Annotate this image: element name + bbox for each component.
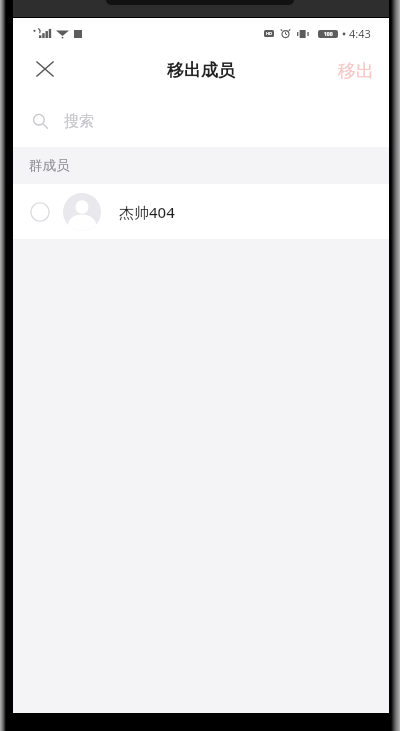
button[interactable]: Close — [23, 47, 67, 91]
staticText: 搜索 — [64, 112, 94, 131]
button[interactable]: 搜索 — [13, 104, 389, 139]
staticText: HD — [266, 31, 272, 36]
staticText: 移出成员 — [167, 60, 235, 81]
button[interactable]: 选择 杰帅404 — [13, 184, 389, 239]
button[interactable]: 移出 — [332, 54, 380, 89]
staticText: 移出 — [338, 60, 374, 83]
staticText: 4:43 — [349, 26, 371, 41]
staticText: 群成员 — [29, 157, 70, 174]
button[interactable]: 选择 杰帅404 — [25, 197, 55, 227]
staticText: 100 — [324, 31, 333, 38]
staticText: 杰帅404 — [119, 202, 175, 222]
